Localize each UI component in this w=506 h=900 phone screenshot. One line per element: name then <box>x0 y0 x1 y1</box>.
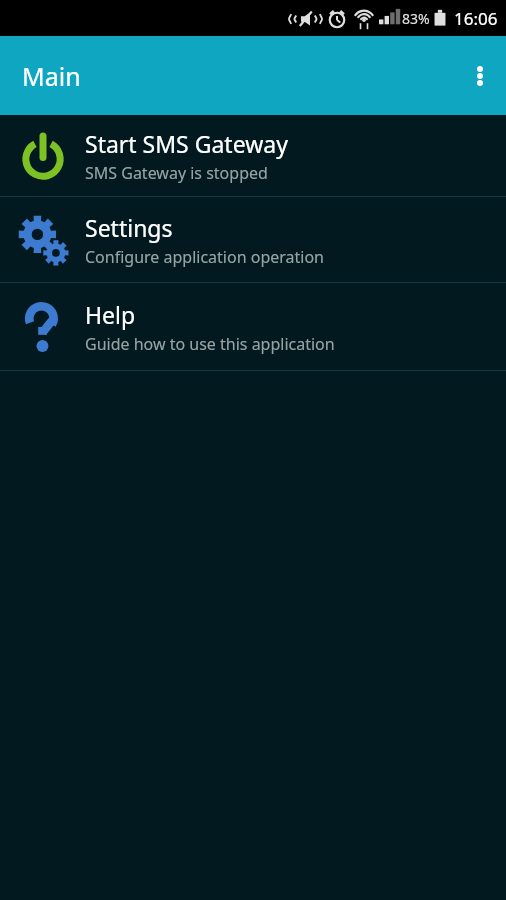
button[interactable]: Settings <box>0 197 506 282</box>
button[interactable]: Start SMS Gateway <box>0 115 506 196</box>
button[interactable]: More options <box>454 36 506 115</box>
staticText: Guide how to use this application <box>85 333 335 355</box>
staticText: Main <box>22 59 81 93</box>
staticText: SMS Gateway is stopped <box>85 162 268 184</box>
staticText: 16:06 <box>454 7 498 30</box>
staticText: Configure application operation <box>85 246 324 268</box>
button[interactable]: Help <box>0 283 506 370</box>
staticText: Settings <box>85 212 173 243</box>
staticText: Help <box>85 299 136 330</box>
staticText: Start SMS Gateway <box>85 128 288 159</box>
staticText: 83% <box>402 9 430 28</box>
